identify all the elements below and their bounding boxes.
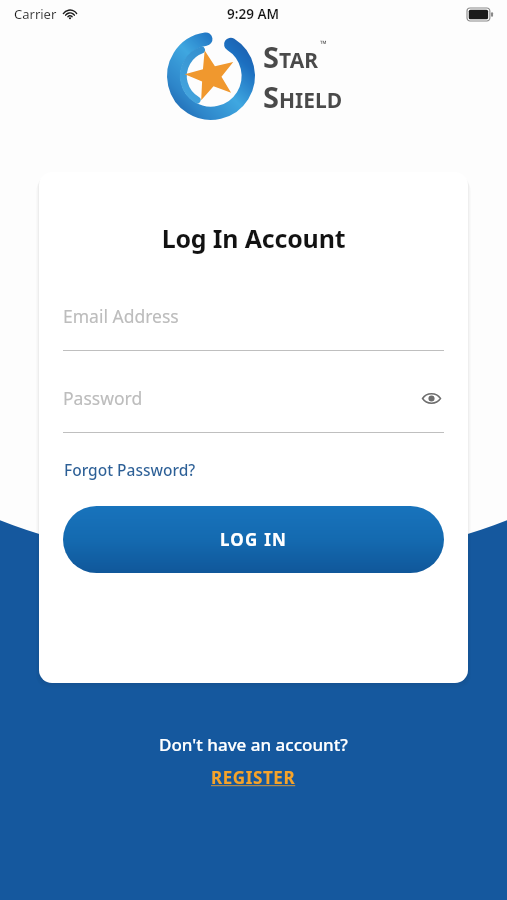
button[interactable]: Show password — [418, 385, 444, 411]
button[interactable]: LOG IN — [63, 506, 444, 573]
button[interactable]: Password — [63, 384, 444, 433]
staticText: ™ — [320, 37, 327, 49]
staticText: Log In Account — [63, 221, 444, 255]
staticText: TAR — [279, 46, 318, 75]
staticText: Carrier — [14, 5, 57, 23]
staticText: S — [263, 37, 279, 76]
staticText: 9:29 AM — [227, 5, 280, 23]
staticText: Don't have an account? — [159, 733, 348, 756]
staticText: HIELD — [279, 86, 343, 115]
button[interactable]: Forgot Password? — [63, 456, 197, 483]
staticText: REGISTER — [211, 766, 296, 789]
staticText: Email Address — [63, 304, 444, 328]
staticText: S — [263, 77, 279, 116]
button[interactable]: Email Address — [63, 302, 444, 351]
staticText: Forgot Password? — [64, 459, 196, 480]
staticText: Password — [63, 386, 418, 410]
staticText: LOG IN — [220, 528, 287, 551]
button[interactable]: REGISTER — [205, 764, 302, 791]
